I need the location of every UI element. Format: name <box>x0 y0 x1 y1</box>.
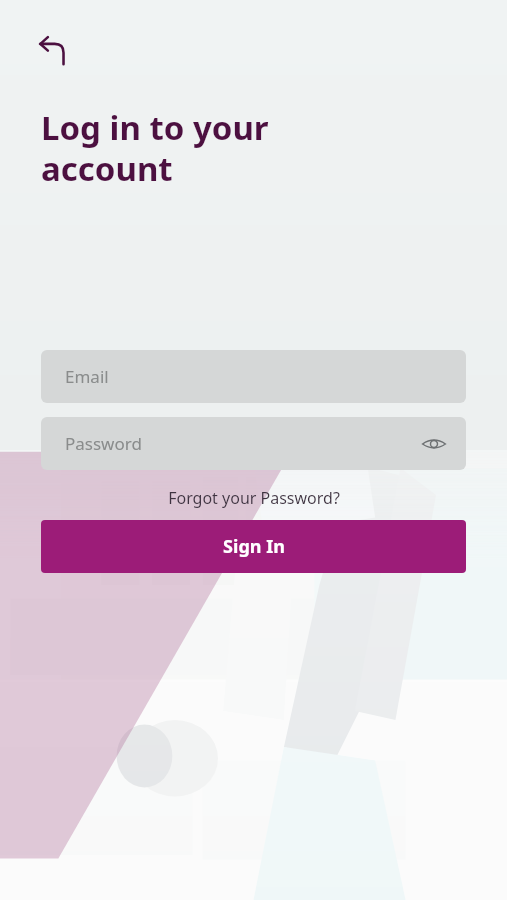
button[interactable]: Password <box>41 417 466 470</box>
staticText: Email <box>65 365 109 388</box>
staticText: Sign In <box>223 534 285 559</box>
button[interactable]: Email <box>41 350 466 403</box>
button[interactable]: Show password <box>414 424 454 464</box>
staticText: Forgot your Password? <box>168 487 340 509</box>
staticText: Log in to your account <box>41 105 269 191</box>
button[interactable]: Sign In <box>41 520 466 573</box>
button[interactable]: Back <box>30 26 78 74</box>
staticText: Password <box>65 432 142 455</box>
button[interactable]: Forgot your Password? <box>0 483 507 513</box>
